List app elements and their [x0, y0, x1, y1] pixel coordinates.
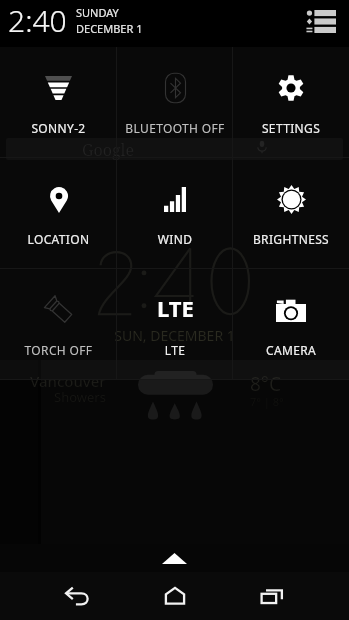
button[interactable]: LTE — [117, 269, 233, 379]
staticText: WIND — [117, 231, 233, 247]
staticText: LTE — [157, 293, 194, 323]
staticText: SUN, DECEMBER 1 — [0, 326, 349, 345]
staticText: SUNDAY — [76, 5, 119, 20]
button[interactable]: BRIGHTNESS — [233, 158, 349, 268]
button[interactable]: Home — [131, 572, 219, 620]
button[interactable]: LOCATION — [0, 158, 117, 268]
staticText: SONNY-2 — [0, 120, 117, 136]
button[interactable]: BLUETOOTH OFF — [117, 47, 233, 157]
staticText: Google — [82, 139, 135, 161]
staticText: LOCATION — [0, 231, 117, 247]
button[interactable]: Back — [34, 572, 122, 620]
staticText: BRIGHTNESS — [233, 231, 349, 247]
button[interactable]: TORCH OFF — [0, 269, 117, 379]
button[interactable]: Collapse quick settings — [0, 544, 349, 572]
button[interactable]: SONNY-2 — [0, 47, 117, 157]
staticText: TORCH OFF — [0, 342, 117, 358]
staticText: LTE — [117, 342, 233, 358]
staticText: Vancouver — [30, 371, 106, 391]
staticText: DECEMBER 1 — [76, 21, 143, 36]
staticText: BLUETOOTH OFF — [117, 120, 233, 136]
button[interactable]: CAMERA — [233, 269, 349, 379]
button[interactable]: Notifications — [303, 3, 339, 39]
button[interactable]: SETTINGS — [233, 47, 349, 157]
staticText: SETTINGS — [233, 120, 349, 136]
staticText: Showers — [54, 388, 106, 406]
staticText: 2:40 — [8, 0, 67, 41]
staticText: CAMERA — [233, 342, 349, 358]
button[interactable]: WIND — [117, 158, 233, 268]
button[interactable]: Recents — [228, 572, 316, 620]
staticText: 8°C — [250, 371, 282, 397]
